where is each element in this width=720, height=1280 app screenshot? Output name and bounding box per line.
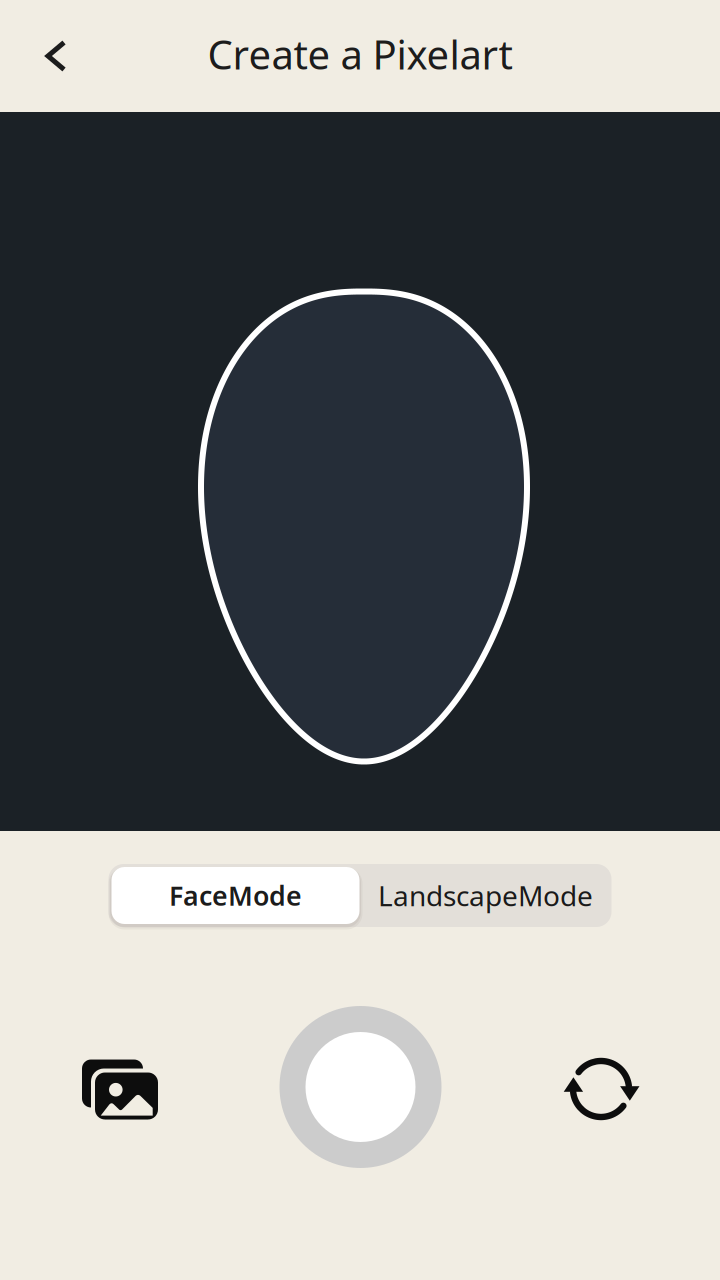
button[interactable]: LandscapeMode (359, 867, 611, 924)
button[interactable]: Back (0, 20, 86, 91)
button[interactable]: Take Photo (279, 1006, 441, 1168)
button[interactable]: FaceMode (111, 867, 359, 924)
button[interactable]: Switch Camera (563, 1052, 639, 1122)
button[interactable]: Photo Library (82, 1056, 158, 1117)
staticText: LandscapeMode (378, 877, 593, 914)
staticText: FaceMode (169, 878, 302, 913)
staticText: Create a Pixelart (207, 27, 512, 80)
